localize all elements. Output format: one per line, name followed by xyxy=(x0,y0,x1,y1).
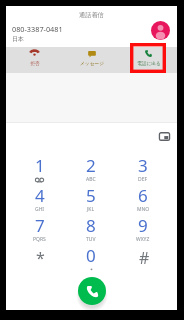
staticText: 8 xyxy=(86,214,96,237)
button[interactable]: 6 xyxy=(117,184,169,214)
button[interactable]: 3 xyxy=(117,154,169,184)
staticText: 4 xyxy=(35,184,45,207)
staticText: メッセージ xyxy=(80,60,104,66)
staticText: 通話着信 xyxy=(79,11,104,19)
staticText: 1 xyxy=(35,154,45,177)
button[interactable]: # xyxy=(117,244,169,274)
staticText: 2 xyxy=(86,154,96,177)
staticText: 電話に出る xyxy=(137,60,161,66)
button[interactable]: メッセージ xyxy=(63,47,120,73)
button[interactable]: 1 xyxy=(14,154,65,184)
staticText: PQRS xyxy=(33,236,46,243)
button[interactable]: 8 xyxy=(65,214,117,244)
staticText: DEF xyxy=(138,176,148,183)
button[interactable]: 4 xyxy=(14,184,65,214)
staticText: 7 xyxy=(35,214,45,237)
staticText: MNO xyxy=(137,206,150,213)
button[interactable]: Call xyxy=(78,277,106,305)
button[interactable]: 2 xyxy=(65,154,117,184)
staticText: # xyxy=(139,247,150,269)
button[interactable]: 5 xyxy=(65,184,117,214)
staticText: 0 xyxy=(86,244,96,267)
staticText: 9 xyxy=(138,214,148,237)
staticText: WXYZ xyxy=(136,236,150,243)
staticText: 5 xyxy=(86,184,96,207)
staticText: * xyxy=(36,247,45,269)
button[interactable]: Contact photo xyxy=(151,21,170,40)
staticText: 拒否 xyxy=(30,60,40,66)
staticText: TUV xyxy=(86,236,96,243)
staticText: GHI xyxy=(35,206,45,213)
staticText: 6 xyxy=(138,184,148,207)
staticText: ABC xyxy=(86,176,96,183)
staticText: 日本 xyxy=(12,35,24,43)
button[interactable]: 電話に出る xyxy=(120,47,177,73)
button[interactable]: 拒否 xyxy=(6,47,63,73)
button[interactable]: 7 xyxy=(14,214,65,244)
staticText: 080-3387-0481 xyxy=(12,24,63,34)
button[interactable]: Picture in picture xyxy=(158,130,171,143)
staticText: 3 xyxy=(138,154,148,177)
button[interactable]: 9 xyxy=(117,214,169,244)
staticText: JKL xyxy=(87,206,95,213)
button[interactable]: 0 xyxy=(65,244,117,274)
button[interactable]: * xyxy=(14,244,65,274)
